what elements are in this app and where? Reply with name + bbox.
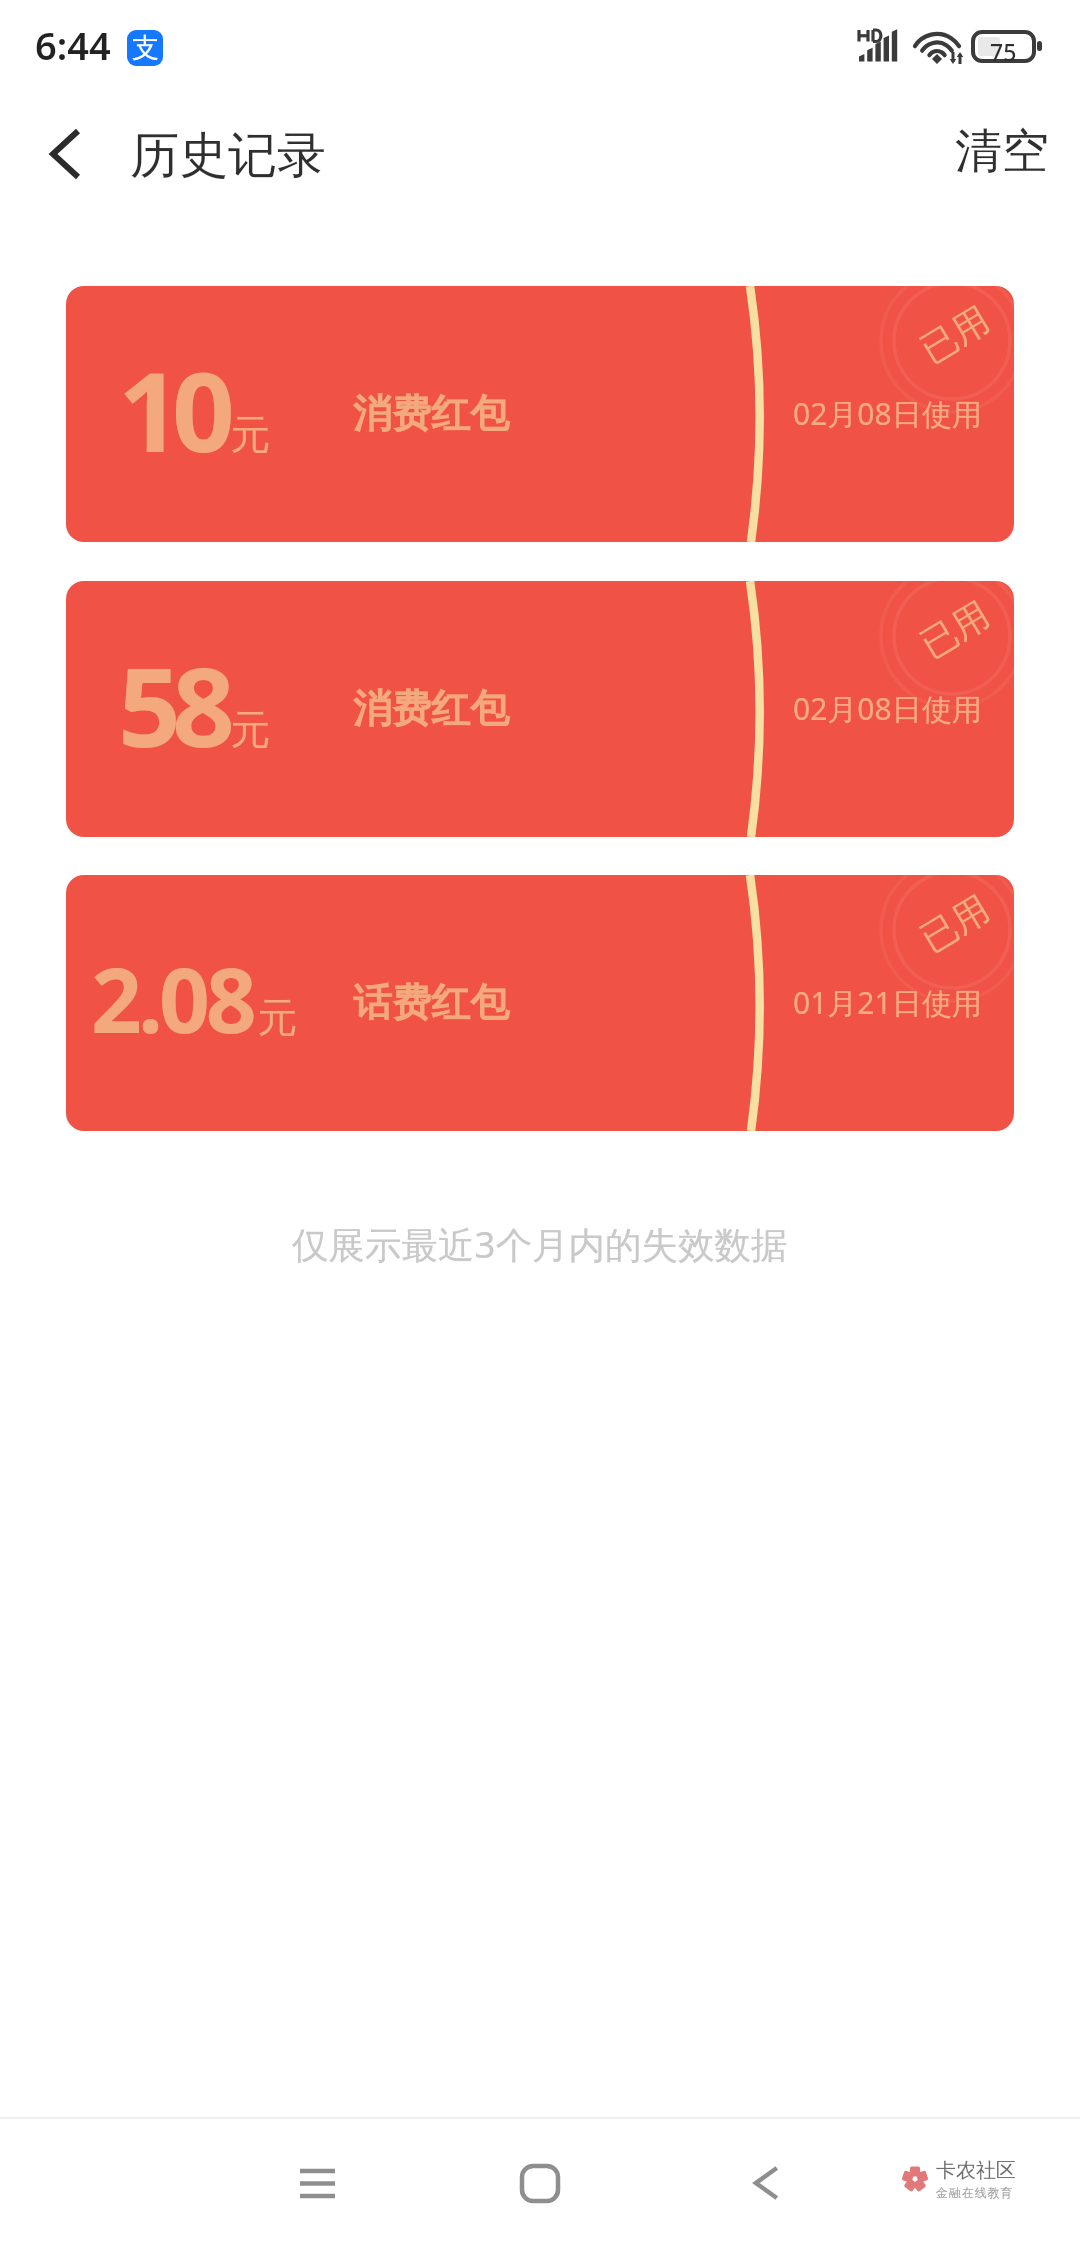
button[interactable]: 清空 bbox=[931, 122, 1080, 181]
staticText: 2.08 bbox=[91, 938, 253, 1059]
staticText: 02月08日使用 bbox=[793, 393, 982, 434]
button[interactable]: Home bbox=[485, 2128, 595, 2238]
button[interactable]: Recent apps bbox=[262, 2128, 372, 2238]
button[interactable]: 58 bbox=[66, 581, 1014, 837]
staticText: 元 bbox=[230, 409, 270, 459]
staticText: 6:44 bbox=[35, 19, 111, 71]
button[interactable]: 10 bbox=[66, 286, 1014, 542]
staticText: 消费红包 bbox=[353, 389, 509, 438]
staticText: 消费红包 bbox=[353, 684, 509, 733]
staticText: 已用 bbox=[913, 886, 997, 961]
staticText: 清空 bbox=[955, 122, 1049, 181]
staticText: 10 bbox=[118, 334, 226, 484]
staticText: 已用 bbox=[913, 592, 997, 667]
staticText: 58 bbox=[118, 629, 226, 779]
staticText: 元 bbox=[257, 992, 297, 1042]
staticText: 元 bbox=[230, 704, 270, 754]
staticText: 历史记录 bbox=[130, 125, 326, 187]
button[interactable]: Back bbox=[711, 2128, 821, 2238]
staticText: 话费红包 bbox=[353, 978, 509, 1027]
staticText: 已用 bbox=[913, 297, 997, 372]
staticText: 支 bbox=[132, 31, 159, 65]
staticText: 仅展示最近3个月内的失效数据 bbox=[292, 1219, 788, 1269]
staticText: 金融在线教育 bbox=[936, 2185, 1014, 2200]
staticText: 卡农社区 bbox=[936, 2158, 1016, 2183]
staticText: 01月21日使用 bbox=[793, 982, 982, 1023]
button[interactable]: Back bbox=[28, 117, 102, 191]
staticText: 02月08日使用 bbox=[793, 688, 982, 729]
staticText: 75 bbox=[990, 36, 1017, 67]
button[interactable]: 2.08 bbox=[66, 875, 1014, 1131]
